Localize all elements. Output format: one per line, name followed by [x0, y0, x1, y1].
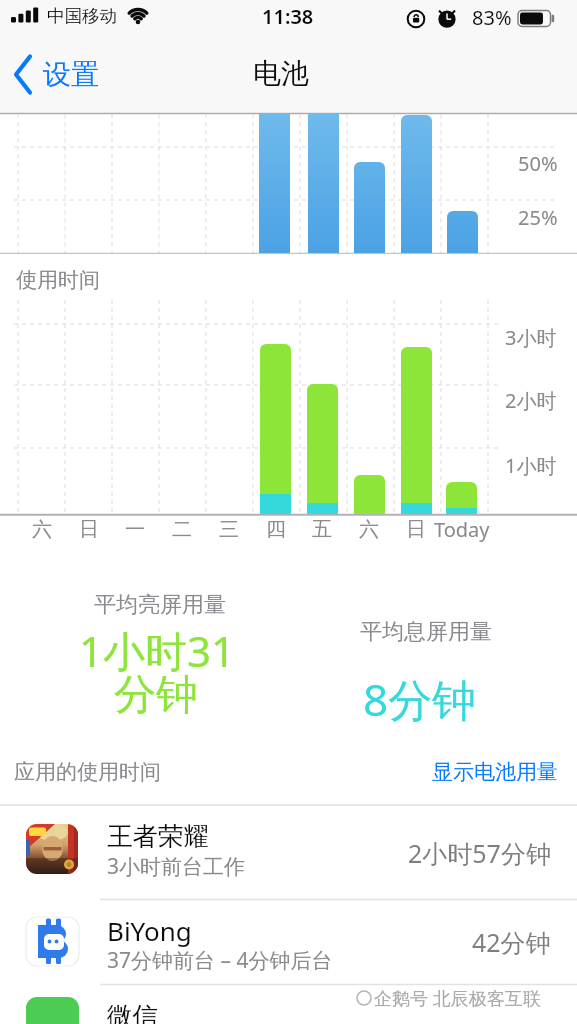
staticText: 8分钟 [363, 669, 477, 729]
staticText: 四 [266, 517, 286, 542]
staticText: 使用时间 [16, 267, 100, 293]
staticText: 日 [406, 517, 426, 542]
staticText: 50% [518, 150, 558, 177]
staticText: 应用的使用时间 [14, 759, 161, 785]
button[interactable] [397, 748, 567, 792]
staticText: 37分钟前台 – 4分钟后台 [107, 946, 333, 975]
button[interactable] [0, 985, 577, 1024]
staticText: 83% [472, 4, 512, 31]
staticText: 中国移动 [47, 5, 117, 27]
staticText: 分钟 [114, 669, 198, 722]
button[interactable] [0, 900, 577, 985]
staticText: 六 [32, 517, 52, 542]
staticText: 显示电池用量 [432, 759, 558, 785]
staticText: 平均息屏用量 [360, 618, 492, 646]
staticText: 三 [219, 517, 239, 542]
staticText: 25% [518, 204, 558, 231]
staticText: 电池 [253, 56, 309, 91]
staticText: 11:38 [262, 3, 314, 30]
button[interactable] [0, 48, 120, 100]
staticText: 3小时 [505, 324, 557, 351]
staticText: 二 [172, 517, 192, 542]
staticText: 2小时 [505, 387, 557, 414]
staticText: 1小时31 [79, 622, 236, 679]
button[interactable] [0, 805, 577, 900]
staticText: 一 [125, 517, 145, 542]
staticText: 设置 [43, 57, 99, 92]
staticText: 微信 [107, 1000, 158, 1024]
staticText: BiYong [107, 913, 192, 948]
staticText: 42分钟 [472, 925, 551, 959]
staticText: 1小时 [505, 452, 557, 479]
staticText: 平均亮屏用量 [94, 591, 226, 619]
staticText: 3小时前台工作 [107, 852, 246, 881]
staticText: 王者荣耀 [107, 820, 209, 852]
staticText: 六 [359, 517, 379, 542]
staticText: 企鹅号 北辰极客互联 [374, 986, 541, 1011]
staticText: 五 [312, 517, 332, 542]
staticText: Today [434, 516, 490, 543]
staticText: 日 [79, 517, 99, 542]
staticText: 2小时57分钟 [408, 836, 551, 870]
